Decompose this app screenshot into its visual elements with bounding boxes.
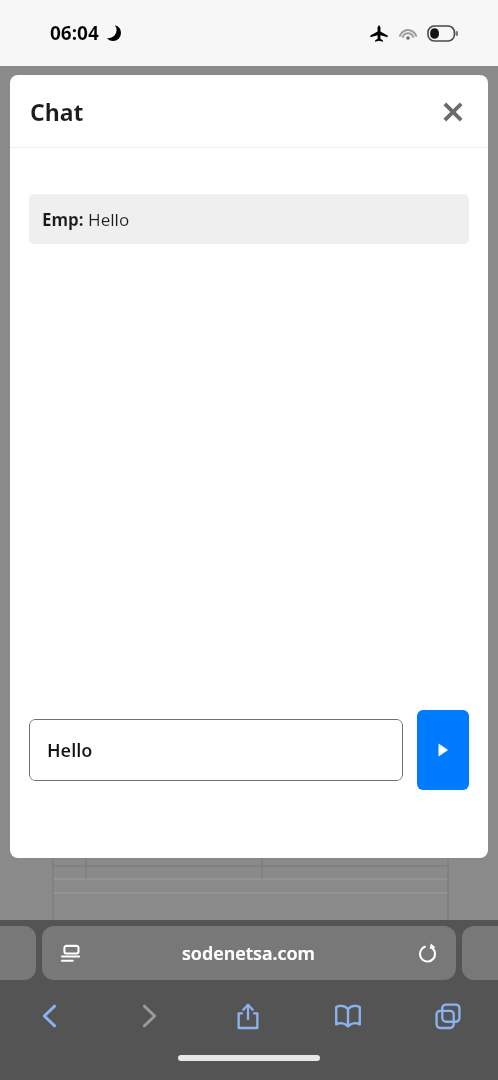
staticText: 06:04	[50, 20, 99, 46]
button[interactable]: Share	[198, 985, 298, 1047]
button[interactable]: Bookmarks	[298, 985, 398, 1047]
button[interactable]: Emp: Hello	[29, 194, 469, 244]
staticText: Emp: Hello	[42, 208, 130, 231]
button[interactable]: Page settings	[42, 926, 456, 980]
button[interactable]: Send	[417, 710, 469, 790]
button[interactable]: Hello	[29, 719, 403, 781]
button[interactable]: Forward	[99, 985, 198, 1047]
button[interactable]: Back	[0, 985, 99, 1047]
button[interactable]: Close	[436, 95, 470, 129]
button[interactable]: Tabs	[398, 985, 498, 1047]
other: Page settings	[58, 941, 82, 965]
staticText: Chat	[30, 96, 84, 127]
staticText: Hello	[47, 738, 93, 763]
staticText: sodenetsa.com	[182, 941, 315, 966]
other: Reload	[414, 940, 440, 966]
